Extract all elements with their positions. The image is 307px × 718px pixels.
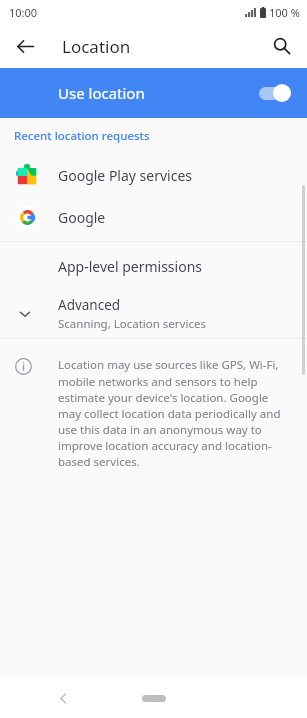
- staticText: Advanced: [58, 296, 121, 314]
- staticText: Location may use sources like GPS, Wi-Fi…: [58, 357, 289, 469]
- staticText: Location: [62, 35, 131, 58]
- button[interactable]: Advanced: [0, 290, 307, 338]
- staticText: Use location: [58, 83, 145, 103]
- button[interactable]: Search: [267, 31, 297, 61]
- staticText: Scanning, Location services: [58, 316, 206, 332]
- staticText: App-level permissions: [58, 257, 203, 276]
- staticText: 100 %: [269, 5, 300, 20]
- button[interactable]: Google Play services: [0, 154, 307, 196]
- staticText: Google Play services: [58, 166, 193, 185]
- button[interactable]: Back: [50, 685, 76, 711]
- button[interactable]: Google: [0, 196, 307, 238]
- staticText: 10:00: [9, 5, 38, 20]
- button[interactable]: Home: [140, 690, 168, 706]
- staticText: Recent location requests: [14, 128, 150, 144]
- button[interactable]: App-level permissions: [0, 242, 307, 290]
- staticText: Google: [58, 208, 106, 227]
- button[interactable]: Use location: [0, 68, 307, 118]
- button[interactable]: Back: [10, 31, 40, 61]
